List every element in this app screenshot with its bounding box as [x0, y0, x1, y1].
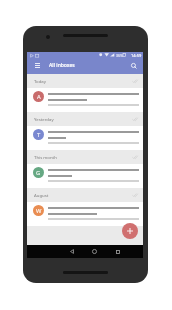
staticText: A: [37, 93, 41, 101]
button[interactable]: G: [27, 164, 143, 188]
staticText: 36%: [116, 53, 124, 58]
staticText: W: [36, 207, 42, 215]
staticText: This month: [34, 154, 57, 160]
button[interactable]: Search: [127, 59, 140, 72]
staticText: Today: [34, 78, 46, 84]
button[interactable]: Today: [27, 74, 143, 88]
button[interactable]: Home: [89, 246, 100, 257]
button[interactable]: T: [27, 126, 143, 150]
button[interactable]: Open navigation menu: [31, 59, 44, 72]
button[interactable]: This month: [27, 150, 143, 164]
button[interactable]: A: [27, 88, 143, 112]
button[interactable]: Compose: [122, 223, 138, 239]
button[interactable]: Recent apps: [112, 246, 123, 257]
staticText: August: [34, 192, 49, 198]
staticText: G: [36, 169, 41, 177]
button[interactable]: W: [27, 202, 143, 226]
button[interactable]: Back: [66, 246, 77, 257]
staticText: Yesterday: [34, 116, 54, 122]
button[interactable]: Yesterday: [27, 112, 143, 126]
button[interactable]: August: [27, 188, 143, 202]
staticText: T: [37, 131, 41, 139]
staticText: 14:59: [131, 53, 142, 58]
staticText: All inboxes: [49, 62, 75, 69]
